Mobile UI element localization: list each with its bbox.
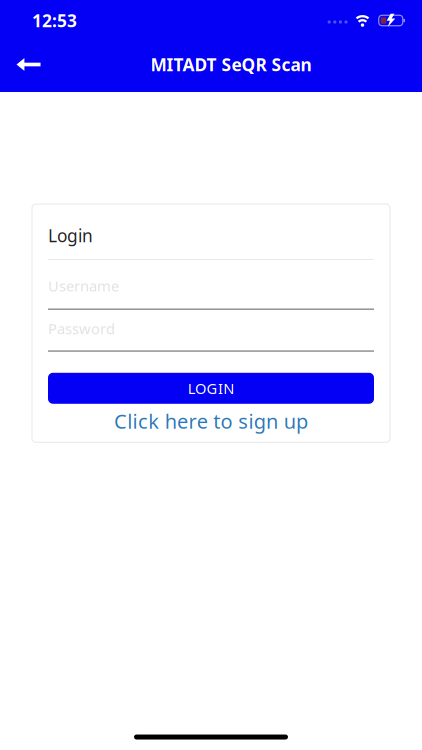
staticText: 12:53 [32,9,77,32]
staticText: LOGIN [188,378,234,398]
button[interactable]: Back [0,40,56,88]
button[interactable]: LOGIN [48,373,374,404]
staticText: Click here to sign up [114,408,308,434]
staticText: MITADT SeQR Scan [150,53,311,76]
staticText: Login [48,224,93,247]
staticText: Password [48,319,115,338]
staticText: Username [48,276,119,295]
button[interactable]: Click here to sign up [48,404,374,434]
